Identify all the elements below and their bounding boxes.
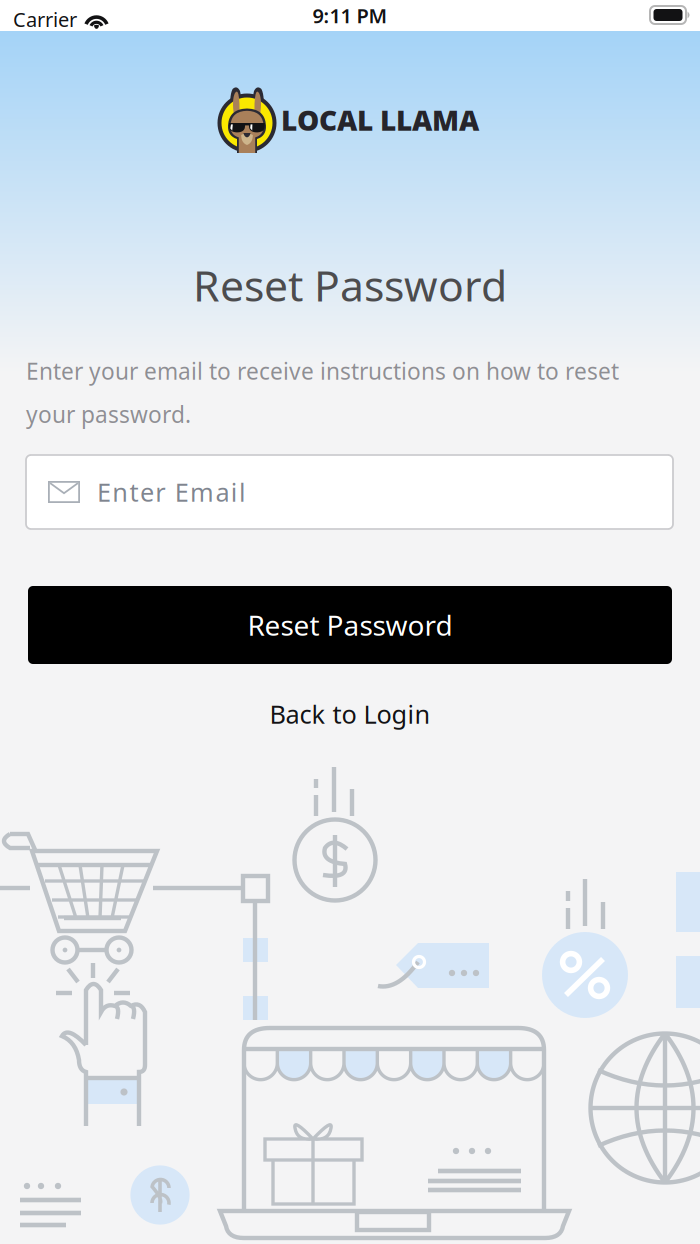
staticText: Reset Password: [247, 606, 452, 644]
staticText: Reset Password: [193, 257, 507, 313]
staticText: Enter your email to receive instructions…: [26, 356, 619, 386]
staticText: LOCAL LLAMA: [281, 101, 479, 139]
button[interactable]: Reset Password: [28, 586, 672, 664]
staticText: Enter Email: [97, 475, 246, 509]
staticText: your password.: [26, 399, 191, 429]
staticText: Back to Login: [269, 697, 430, 731]
staticText: Carrier: [13, 6, 77, 33]
button[interactable]: Enter Email: [26, 455, 673, 529]
button[interactable]: Back to Login: [0, 691, 700, 737]
staticText: 9:11 PM: [312, 2, 387, 29]
